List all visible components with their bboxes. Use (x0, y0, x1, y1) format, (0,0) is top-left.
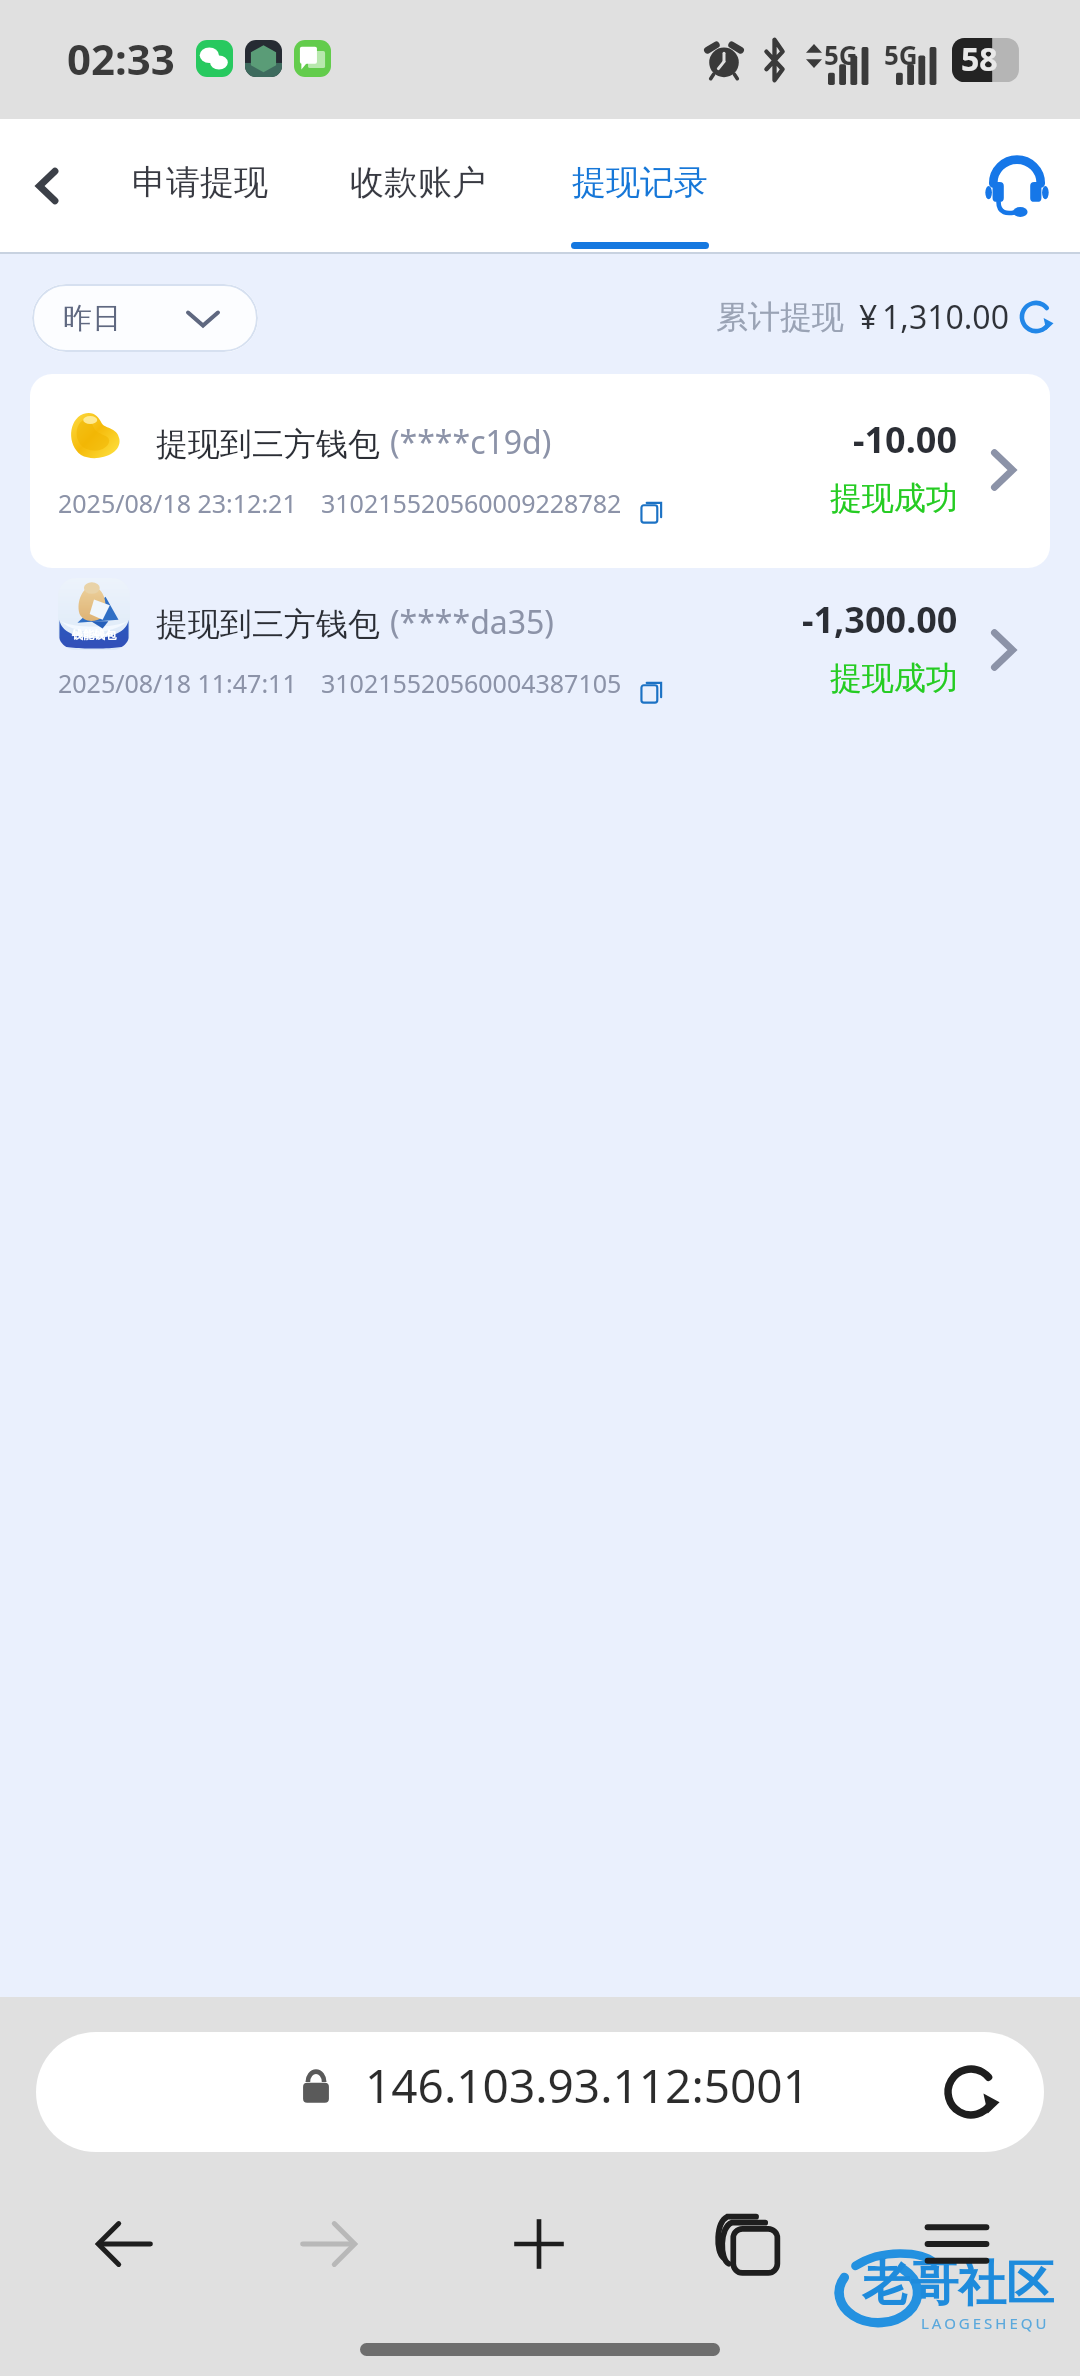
button[interactable]: Copy (635, 675, 669, 709)
button[interactable]: 146.103.93.112:5001 (36, 2032, 1044, 2152)
staticText: 提现成功 (830, 658, 958, 698)
button[interactable]: 提现到三方钱包 (30, 374, 1050, 554)
staticText: 提现到三方钱包 (156, 424, 380, 464)
staticText: 1,310.00 (882, 295, 1009, 339)
button[interactable]: 昨日 (32, 284, 258, 352)
staticText: 5G (884, 37, 918, 72)
button[interactable]: Forward (274, 2189, 384, 2299)
staticText: 2025/08/18 11:47:11 (58, 666, 297, 700)
staticText: 58 (961, 37, 998, 81)
staticText: 2025/08/18 23:12:21 (58, 486, 297, 520)
button[interactable]: Copy (635, 495, 669, 529)
staticText: 310215520560004387105 (321, 666, 622, 700)
button[interactable]: Menu (902, 2189, 1012, 2299)
staticText: 提现记录 (572, 161, 708, 204)
button[interactable]: Back (12, 151, 82, 221)
button[interactable]: Back (69, 2189, 179, 2299)
button[interactable]: Tabs (695, 2189, 805, 2299)
staticText: 老哥社区 (862, 2254, 1054, 2314)
staticText: 146.103.93.112:5001 (365, 2054, 809, 2117)
button[interactable]: New tab (484, 2189, 594, 2299)
button[interactable]: 申请提现 (131, 119, 269, 252)
button[interactable]: 收款账户 (349, 119, 487, 252)
staticText: ¥ (859, 295, 878, 339)
button[interactable]: Customer service (974, 143, 1060, 229)
staticText: 昨日 (63, 300, 121, 337)
staticText: 提现成功 (830, 478, 958, 518)
staticText: LAOGESHEQU (921, 2313, 1050, 2333)
staticText: 提现到三方钱包 (156, 604, 380, 644)
staticText: -10.00 (853, 415, 958, 464)
staticText: 钱能钱包 (72, 628, 116, 642)
staticText: 收款账户 (350, 161, 486, 204)
staticText: 02:33 (67, 30, 175, 87)
button[interactable]: 提现记录 (571, 119, 709, 252)
staticText: 5G (824, 37, 858, 72)
staticText: -1,300.00 (802, 595, 958, 644)
staticText: 累计提现 (716, 297, 844, 337)
staticText: (****c19d) (390, 420, 552, 464)
staticText: 申请提现 (132, 161, 268, 204)
staticText: (****da35) (390, 600, 554, 644)
button[interactable]: Reload (934, 2055, 1008, 2129)
staticText: 310215520560009228782 (321, 486, 622, 520)
button[interactable]: 钱能钱包 (30, 554, 1050, 734)
button[interactable]: Refresh (1014, 295, 1058, 339)
